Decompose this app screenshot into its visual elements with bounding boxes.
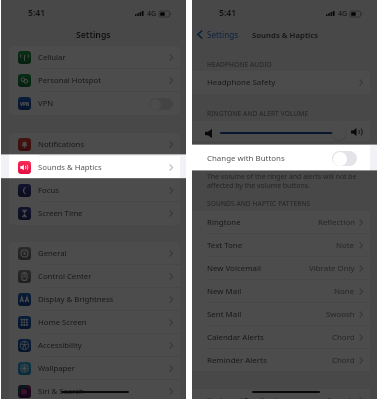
button[interactable]: Display & Brightness — [9, 288, 180, 311]
button[interactable]: General — [9, 242, 180, 265]
staticText: Settings — [207, 29, 239, 40]
staticText: None — [334, 286, 355, 297]
staticText: VPN — [20, 101, 30, 107]
staticText: Keyboard Feedback — [207, 395, 327, 399]
staticText: Swoosh — [326, 309, 355, 320]
button[interactable]: Personal Hotspot — [9, 69, 180, 92]
staticText: Notifications — [38, 139, 85, 150]
staticText: Focus — [38, 185, 59, 196]
staticText: Screen Time — [38, 208, 83, 219]
button[interactable]: Wallpaper — [9, 357, 180, 380]
staticText: Sounds & Haptics — [38, 162, 102, 173]
button[interactable]: Headphone Safety — [192, 71, 370, 94]
button[interactable]: New Mail — [192, 280, 370, 303]
staticText: Note — [336, 240, 355, 251]
staticText: Display & Brightness — [38, 294, 114, 305]
staticText: Text Tone — [207, 240, 336, 251]
staticText: VPN — [38, 98, 54, 109]
button[interactable]: Sent Mail — [192, 303, 370, 326]
button[interactable]: Calendar Alerts — [192, 326, 370, 349]
staticText: 5:41 — [28, 7, 46, 19]
staticText: 4G — [338, 8, 348, 18]
button[interactable]: Ringtone — [192, 211, 370, 234]
button[interactable]: Settings — [197, 29, 239, 40]
staticText: Vibrate Only — [309, 263, 355, 274]
button[interactable]: Reminder Alerts — [192, 349, 370, 371]
button[interactable]: Screen Time — [9, 202, 180, 225]
staticText: Home Screen — [38, 317, 87, 328]
button[interactable]: Text Tone — [192, 234, 370, 257]
button[interactable]: Notifications — [9, 133, 180, 156]
staticText: General — [38, 248, 67, 259]
staticText: Sounds — [327, 395, 355, 399]
staticText: Sounds & Haptics — [252, 30, 319, 41]
staticText: Cellular — [38, 52, 66, 63]
button[interactable]: Cellular — [9, 46, 180, 69]
button[interactable]: Keyboard Feedback — [192, 389, 370, 399]
button[interactable]: Control Center — [9, 265, 180, 288]
staticText: Calendar Alerts — [207, 332, 332, 343]
staticText: Personal Hotspot — [38, 75, 102, 86]
staticText: The volume of the ringer and alerts will… — [207, 172, 357, 190]
staticText: Change with Buttons — [207, 153, 332, 164]
button[interactable]: Change with Buttons — [192, 145, 370, 171]
button[interactable]: Sounds & Haptics — [9, 156, 180, 179]
staticText: Siri & Search — [38, 386, 84, 397]
button[interactable]: Siri & Search — [9, 380, 180, 399]
staticText: Control Center — [38, 271, 92, 282]
staticText: SOUNDS AND HAPTIC PATTERNS — [207, 199, 311, 208]
button[interactable]: Home Screen — [9, 311, 180, 334]
staticText: Wallpaper — [38, 363, 75, 374]
button[interactable]: VPN — [9, 92, 180, 115]
staticText: Sent Mail — [207, 309, 326, 320]
staticText: Reflection — [318, 217, 355, 228]
staticText: Accessibility — [38, 340, 82, 351]
button[interactable]: Focus — [9, 179, 180, 202]
staticText: HEADPHONE AUDIO — [207, 60, 272, 69]
staticText: 4G — [147, 8, 157, 18]
staticText: Reminder Alerts — [207, 355, 332, 366]
staticText: 5:41 — [219, 7, 237, 19]
staticText: New Mail — [207, 286, 334, 297]
staticText: Settings — [76, 29, 111, 41]
staticText: Chord — [332, 355, 355, 366]
staticText: Chord — [332, 332, 355, 343]
button[interactable]: New Voicemail — [192, 257, 370, 280]
staticText: New Voicemail — [207, 263, 309, 274]
staticText: Headphone Safety — [207, 77, 359, 88]
staticText: Ringtone — [207, 217, 318, 228]
staticText: RINGTONE AND ALERT VOLUME — [207, 109, 309, 118]
button[interactable]: Accessibility — [9, 334, 180, 357]
